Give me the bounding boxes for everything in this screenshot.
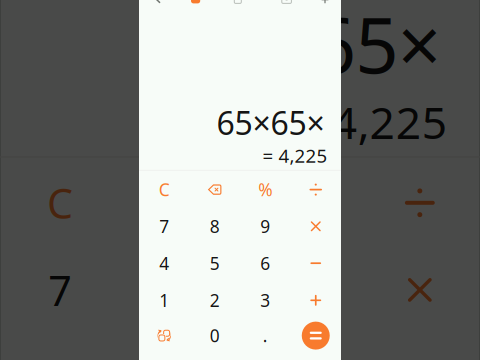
button[interactable]: 0	[189, 317, 240, 354]
button[interactable]: C	[139, 171, 189, 208]
button[interactable]: 6	[240, 245, 290, 282]
staticText: 5	[210, 252, 220, 275]
staticText: 1	[159, 289, 169, 312]
staticText: 1	[159, 289, 169, 312]
staticText: = 4,225	[263, 143, 328, 168]
button[interactable]: 9	[240, 208, 290, 245]
button[interactable]: Multiply	[290, 208, 341, 245]
button[interactable]: Calculator	[185, 0, 207, 9]
button[interactable]: 8	[189, 208, 240, 245]
staticText: 65×65×	[216, 101, 324, 144]
button[interactable]: 9	[240, 208, 290, 245]
button[interactable]: 7	[139, 208, 189, 245]
button[interactable]: .	[240, 317, 290, 354]
button[interactable]: History	[229, 0, 253, 9]
staticText: C	[159, 178, 170, 201]
button[interactable]: 2	[189, 282, 240, 319]
button[interactable]: Minus	[290, 245, 341, 282]
button[interactable]: 1	[139, 282, 189, 319]
button[interactable]: Divide	[290, 171, 341, 208]
button[interactable]: Unit converter	[139, 317, 189, 354]
button[interactable]: Add	[314, 0, 336, 10]
staticText: 0	[210, 324, 220, 347]
button[interactable]: Back	[147, 0, 169, 9]
staticText: 7	[159, 215, 169, 238]
button[interactable]: Back	[147, 0, 169, 9]
button[interactable]: 1	[139, 282, 189, 319]
button[interactable]: History	[229, 0, 253, 9]
staticText: 7	[159, 215, 169, 238]
staticText: 9	[260, 215, 270, 238]
button[interactable]: Delete	[189, 171, 240, 208]
button[interactable]: Multiply	[290, 208, 341, 245]
staticText: 8	[210, 215, 220, 238]
staticText: 0	[210, 324, 220, 347]
button[interactable]: 5	[189, 245, 240, 282]
staticText: .	[263, 324, 268, 347]
staticText: 2	[210, 289, 220, 312]
button[interactable]: Equals	[290, 317, 341, 354]
button[interactable]: %	[240, 171, 290, 208]
staticText: 2	[210, 289, 220, 312]
button[interactable]: 5	[189, 245, 240, 282]
staticText: 8	[210, 215, 220, 238]
staticText: %	[258, 178, 272, 201]
staticText: 4	[159, 252, 169, 275]
button[interactable]: Equals	[290, 317, 341, 354]
button[interactable]: 2	[189, 282, 240, 319]
button[interactable]: Plus	[290, 282, 341, 319]
button[interactable]: Add	[314, 0, 336, 10]
button[interactable]: 4	[139, 245, 189, 282]
staticText: 6	[260, 252, 270, 275]
button[interactable]: %	[240, 171, 290, 208]
button[interactable]: Delete	[189, 171, 240, 208]
button[interactable]: Unit converter	[139, 317, 189, 354]
button[interactable]: 7	[139, 208, 189, 245]
button[interactable]: 3	[240, 282, 290, 319]
staticText: 65×65×	[216, 101, 324, 144]
staticText: %	[258, 178, 272, 201]
button[interactable]: Minus	[290, 245, 341, 282]
button[interactable]: Camera	[276, 0, 298, 9]
button[interactable]: C	[139, 171, 189, 208]
staticText: .	[263, 324, 268, 347]
button[interactable]: 3	[240, 282, 290, 319]
button[interactable]: 8	[189, 208, 240, 245]
button[interactable]: 4	[139, 245, 189, 282]
button[interactable]: 0	[189, 317, 240, 354]
staticText: 5	[210, 252, 220, 275]
button[interactable]: Plus	[290, 282, 341, 319]
button[interactable]: Divide	[290, 171, 341, 208]
staticText: 4	[159, 252, 169, 275]
staticText: = 4,225	[263, 143, 328, 168]
button[interactable]: Calculator	[185, 0, 207, 9]
staticText: 3	[260, 289, 270, 312]
staticText: 9	[260, 215, 270, 238]
staticText: 6	[260, 252, 270, 275]
button[interactable]: 6	[240, 245, 290, 282]
button[interactable]: Camera	[276, 0, 298, 9]
staticText: 3	[260, 289, 270, 312]
staticText: C	[159, 178, 170, 201]
button[interactable]: .	[240, 317, 290, 354]
